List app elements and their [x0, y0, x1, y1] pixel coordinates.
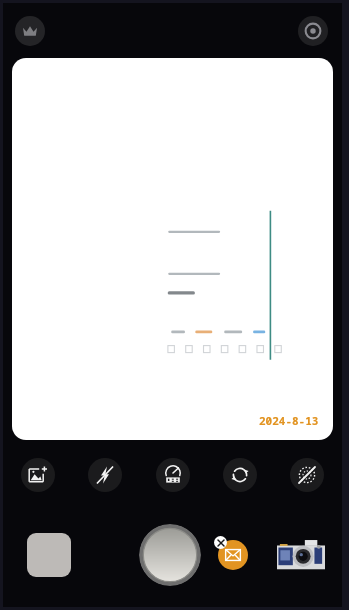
staticText: 2024-8-13 — [259, 413, 319, 428]
button[interactable]: Settings — [298, 16, 328, 46]
button[interactable]: Gallery — [27, 533, 71, 577]
button[interactable]: Shutter — [139, 524, 201, 586]
button[interactable]: Beauty off — [290, 458, 324, 492]
button[interactable]: Flash off — [88, 458, 122, 492]
button[interactable]: Camera mode — [276, 530, 326, 580]
button[interactable]: Message — [218, 540, 248, 570]
button[interactable]: Close ad — [214, 536, 227, 549]
button[interactable]: Switch camera — [223, 458, 257, 492]
button[interactable]: Timer off — [156, 458, 190, 492]
button[interactable]: Add photo — [21, 458, 55, 492]
button[interactable]: Premium — [15, 16, 45, 46]
